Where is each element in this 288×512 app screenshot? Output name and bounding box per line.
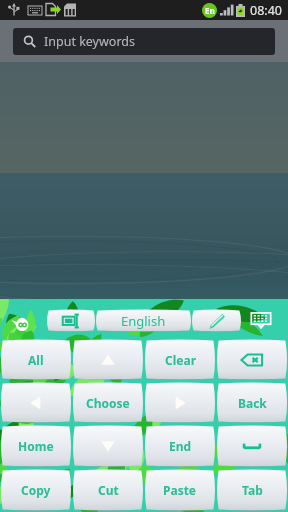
button[interactable]: Input method [48,310,94,331]
staticText: End [169,438,192,454]
button[interactable]: Theme [193,310,240,331]
button[interactable]: Hide keyboard [248,310,274,331]
button[interactable]: End [146,426,214,466]
button[interactable]: Right [146,383,214,422]
staticText: All [28,352,44,368]
staticText: Input keywords [44,33,135,50]
button[interactable]: Tab [218,470,286,510]
staticText: Cut [98,482,119,498]
staticText: Clear [165,352,196,368]
button[interactable]: Down [74,426,142,466]
staticText: En [205,5,215,16]
button[interactable]: Home [2,426,70,466]
button[interactable]: Choose [74,383,142,422]
staticText: Choose [86,395,130,411]
button[interactable]: Copy [2,470,70,510]
button[interactable]: English [97,310,190,331]
button[interactable]: Delete [218,340,286,379]
button[interactable]: Cut [74,470,142,510]
button[interactable]: All [2,340,70,379]
staticText: 08:40 [250,2,282,19]
button[interactable]: Up [74,340,142,379]
staticText: Tab [242,482,263,498]
button[interactable]: Paste [146,470,214,510]
staticText: Paste [163,482,197,498]
button[interactable]: Space [218,426,286,466]
button[interactable]: Back [218,383,286,422]
staticText: English [121,312,166,330]
staticText: Back [238,395,267,411]
button[interactable]: Clear [146,340,214,379]
button[interactable]: Left [2,383,70,422]
button[interactable]: Input keywords [13,28,275,55]
staticText: Copy [21,482,51,498]
staticText: Home [18,438,54,454]
